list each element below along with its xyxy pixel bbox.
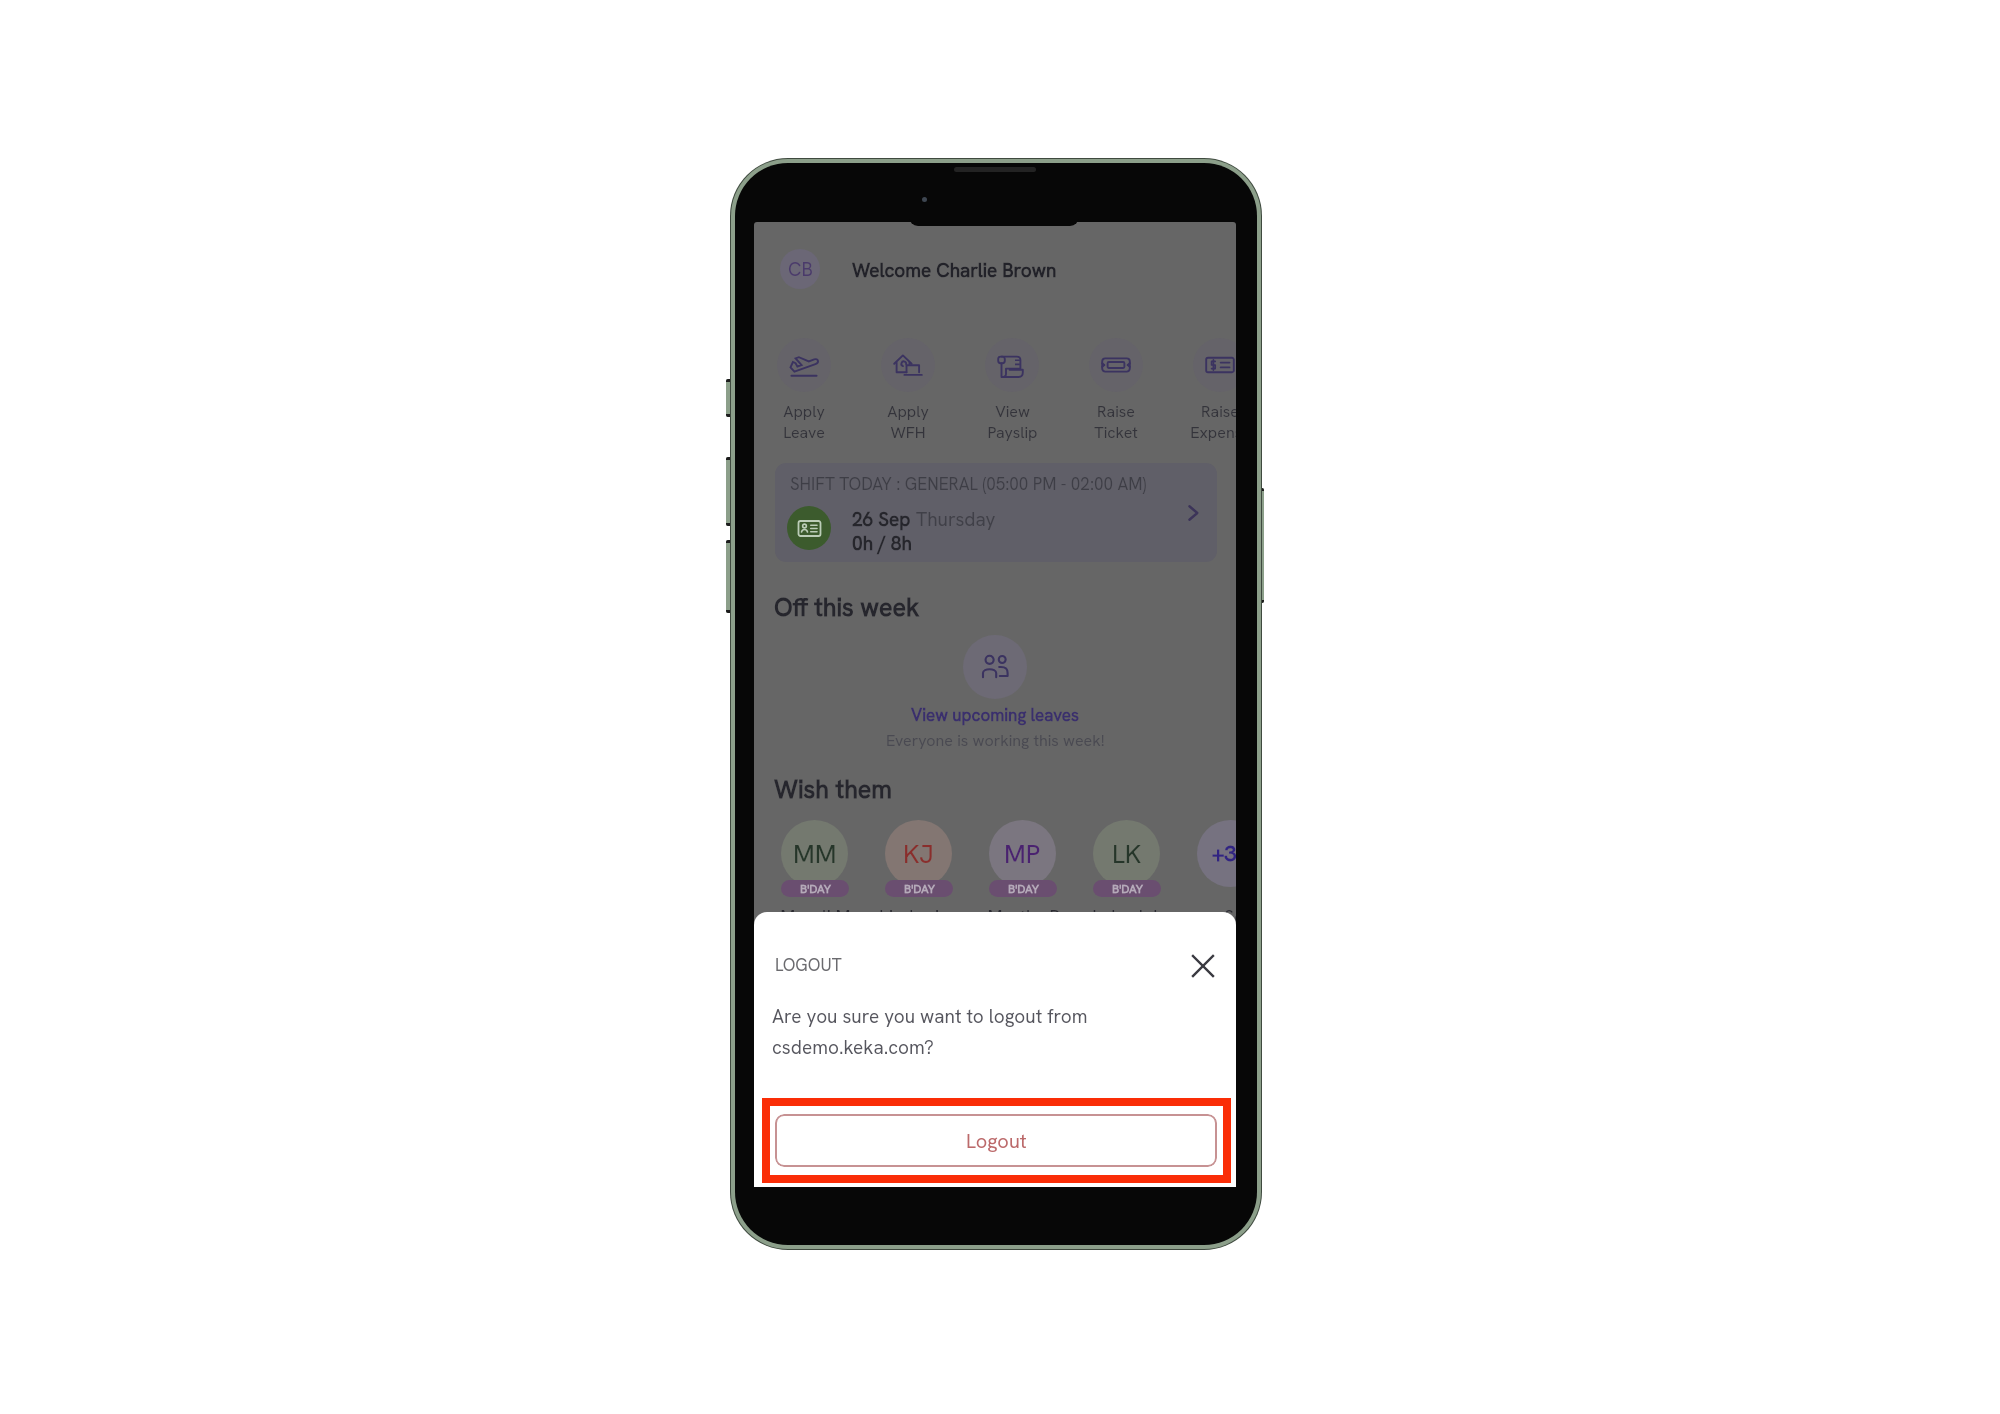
staticText: Wish them (774, 773, 893, 806)
staticText: csdemo.keka.com? (772, 1035, 934, 1060)
staticText: KJ (903, 837, 934, 871)
staticText: Murali M (780, 905, 851, 928)
staticText: Raise (1201, 401, 1236, 422)
button[interactable]: KJ (885, 820, 952, 887)
staticText: B'DAY (1112, 881, 1143, 897)
staticText: Everyone is working this week! (886, 730, 1105, 751)
button[interactable] (985, 338, 1039, 392)
staticText: LOGOUT (775, 954, 842, 976)
staticText: View (995, 401, 1030, 422)
button[interactable]: LK (1093, 820, 1160, 887)
staticText: 26 Sep (852, 507, 916, 532)
staticText: LK (1112, 837, 1142, 871)
staticText: Raise (1097, 401, 1135, 422)
staticText: Off this week (774, 591, 920, 624)
button[interactable] (881, 338, 935, 392)
staticText: SHIFT TODAY : GENERAL (05:00 PM - 02:00 … (790, 473, 1147, 495)
button[interactable] (777, 338, 831, 392)
button[interactable]: View upcoming leaves (911, 704, 1080, 726)
staticText: MM (793, 837, 837, 871)
staticText: kinder joy (879, 905, 959, 928)
staticText: +31 (1212, 839, 1236, 868)
staticText: B'DAY (904, 881, 935, 897)
staticText: Expense (1190, 422, 1236, 443)
staticText: MP (1004, 837, 1041, 871)
staticText: 0h / 8h (852, 531, 912, 556)
button[interactable]: Logout (775, 1114, 1217, 1167)
staticText: Se (1224, 905, 1236, 928)
button[interactable]: +31 (1197, 820, 1236, 887)
staticText: Apply (783, 401, 825, 422)
staticText: Leave (783, 422, 825, 443)
button[interactable]: SHIFT TODAY : GENERAL (05:00 PM - 02:00 … (775, 463, 1217, 562)
staticText: Payslip (987, 422, 1038, 443)
button[interactable]: CB (780, 249, 820, 289)
staticText: Lokesh k (1092, 905, 1163, 928)
button[interactable]: MP (989, 820, 1056, 887)
staticText: CB (788, 257, 813, 282)
staticText: Apply (887, 401, 929, 422)
staticText: Are you sure you want to logout from (772, 1004, 1088, 1029)
button[interactable]: MM (781, 820, 848, 887)
staticText: B'DAY (800, 881, 831, 897)
staticText: B'DAY (1008, 881, 1039, 897)
staticText: WFH (890, 422, 926, 443)
staticText: Logout (966, 1128, 1027, 1154)
staticText: Thursday (916, 507, 996, 532)
button[interactable] (1089, 338, 1143, 392)
button[interactable]: Close (1187, 950, 1219, 982)
staticText: Welcome Charlie Brown (852, 258, 1057, 283)
staticText: Ticket (1094, 422, 1138, 443)
button[interactable] (1193, 338, 1236, 392)
staticText: Murthy P (987, 905, 1060, 928)
